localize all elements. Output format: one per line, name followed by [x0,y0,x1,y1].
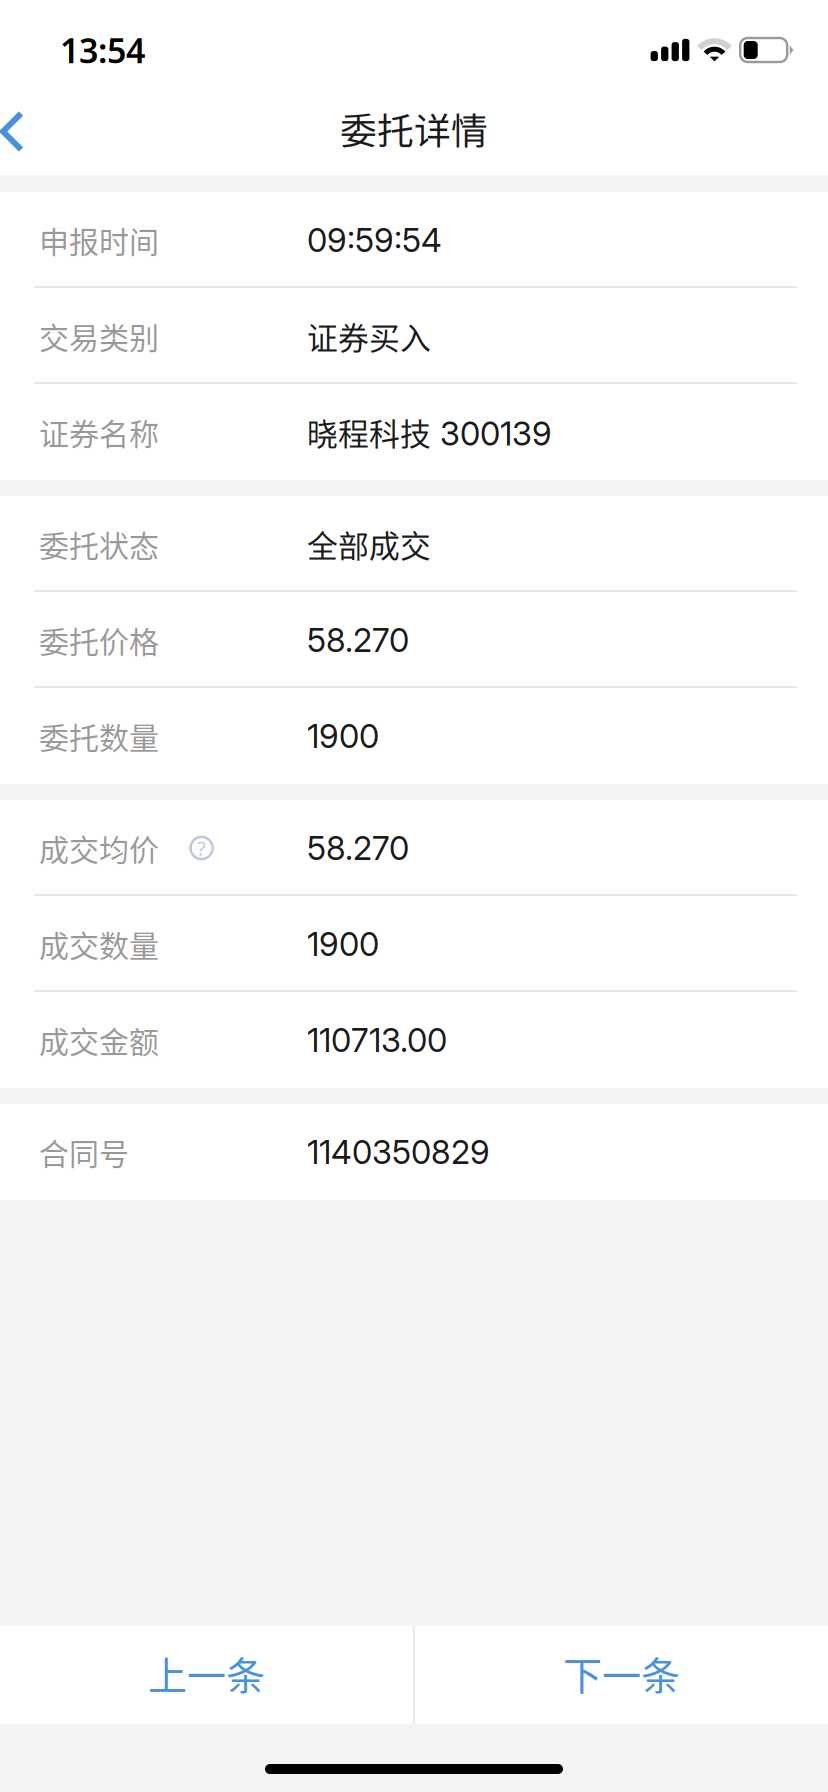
staticText: 下一条 [563,1645,680,1701]
button[interactable]: Back [0,88,58,175]
staticText: 委托价格 [39,618,159,662]
staticText: 晓程科技 [307,410,431,454]
button[interactable]: 上一条 [0,1626,413,1724]
staticText: 委托数量 [39,714,159,758]
staticText: 1900 [307,924,379,964]
staticText: 交易类别 [39,314,159,358]
staticText: 委托状态 [39,522,159,566]
staticText: 成交数量 [39,922,159,966]
staticText: 合同号 [39,1130,129,1174]
staticText: ? [197,834,206,862]
staticText: 上一条 [148,1645,265,1701]
staticText: 1900 [307,716,379,756]
staticText: 委托详情 [340,102,488,155]
staticText: 1140350829 [307,1132,490,1172]
staticText: 成交均价 [39,826,159,870]
staticText: 申报时间 [39,218,159,262]
staticText: 13:54 [60,27,145,73]
staticText: 58.270 [307,620,409,660]
staticText: 证券买入 [307,314,431,358]
staticText: 09:59:54 [307,220,442,260]
staticText: 58.270 [307,828,409,868]
staticText: 110713.00 [307,1020,447,1060]
button[interactable]: 关于成交均价 [190,837,213,859]
button[interactable]: 下一条 [415,1626,828,1724]
staticText: 成交金额 [39,1018,159,1062]
staticText: 证券名称 [39,410,159,454]
staticText: 300139 [431,414,552,453]
staticText: 全部成交 [307,522,431,566]
